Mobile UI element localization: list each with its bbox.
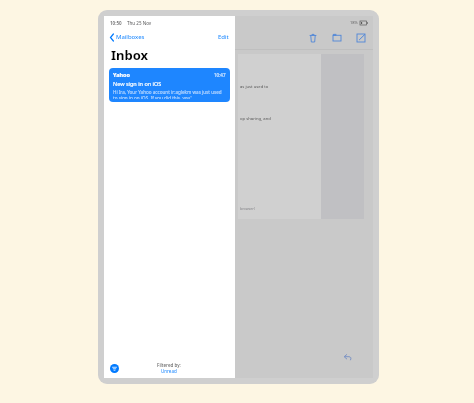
button[interactable]: Move to folder bbox=[331, 32, 342, 43]
staticText: 18% bbox=[350, 20, 358, 25]
staticText: op sharing, and bbox=[240, 116, 271, 122]
staticText: Yahoo bbox=[113, 71, 130, 78]
staticText: 10:47 bbox=[214, 72, 226, 78]
staticText: Filtered by: bbox=[157, 362, 181, 368]
staticText: Edit bbox=[218, 33, 229, 41]
staticText: Mailboxes bbox=[116, 33, 145, 41]
staticText: Inbox bbox=[111, 46, 149, 64]
staticText: Hi Ira, Your Yahoo account ir:aglekm was… bbox=[113, 89, 226, 99]
button[interactable]: Edit bbox=[218, 33, 229, 41]
staticText: Thu 25 Nov bbox=[127, 20, 152, 26]
staticText: New sign in on iOS bbox=[113, 80, 162, 87]
button[interactable]: Delete bbox=[307, 32, 318, 43]
staticText: browser( bbox=[240, 206, 255, 211]
staticText: 10:50 bbox=[110, 20, 122, 26]
button[interactable]: Reply bbox=[343, 352, 353, 362]
staticText: as just used to bbox=[240, 84, 269, 90]
button[interactable]: Compose bbox=[355, 32, 366, 43]
button[interactable]: Filter bbox=[110, 364, 119, 373]
button[interactable]: Yahoo bbox=[109, 68, 230, 102]
staticText: Unread bbox=[161, 368, 177, 374]
button[interactable]: Mailboxes bbox=[110, 33, 145, 41]
